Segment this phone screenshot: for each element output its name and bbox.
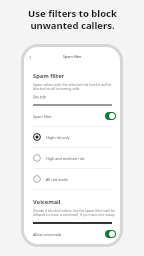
staticText: All risk levels: [46, 177, 69, 182]
button[interactable]: High risk only: [33, 127, 116, 147]
staticText: High and medium risk: [46, 156, 85, 161]
staticText: Use filters to block unwanted callers.: [28, 7, 117, 31]
button[interactable]: High and medium risk: [33, 148, 116, 168]
staticText: Voicemail: [33, 198, 61, 206]
staticText: Spam filter: [63, 54, 82, 59]
button[interactable]: Back: [25, 52, 35, 62]
button[interactable]: Get info: [33, 94, 47, 99]
staticText: Spam callers with the selected risk leve…: [33, 82, 112, 91]
button[interactable]: All risk levels: [33, 169, 116, 189]
staticText: Decide if blocked callers (via the spam …: [33, 208, 116, 217]
button[interactable]: Spam filter: [33, 108, 116, 124]
staticText: High risk only: [46, 135, 70, 140]
staticText: Spam filter: [33, 72, 65, 80]
staticText: Allow voicemails: [33, 232, 62, 237]
staticText: Spam filter: [33, 114, 52, 119]
button[interactable]: Allow voicemails: [33, 226, 116, 242]
